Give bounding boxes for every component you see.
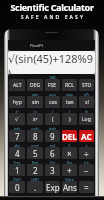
staticText: asin <box>26 92 44 97</box>
staticText: Exp <box>46 182 60 193</box>
staticText: abs <box>8 143 26 148</box>
button[interactable]: sin <box>27 96 43 108</box>
button[interactable]: Log <box>79 113 94 125</box>
button[interactable]: DEG <box>27 79 43 91</box>
staticText: Ans <box>63 182 77 193</box>
staticText: cosh <box>26 126 44 131</box>
staticText: Int <box>78 160 95 165</box>
button[interactable]: 2 <box>27 164 43 176</box>
staticText: STO <box>82 82 92 89</box>
button[interactable]: 7 <box>9 130 25 142</box>
button[interactable]: 9 <box>45 130 60 142</box>
staticText: E <box>61 143 78 148</box>
button[interactable]: ) <box>62 113 77 125</box>
button[interactable]: 3 <box>45 164 60 176</box>
staticText: x! <box>85 99 89 106</box>
staticText: cos <box>49 99 57 106</box>
staticText: mod <box>26 143 44 148</box>
staticText: − <box>84 165 89 176</box>
staticText: CNST <box>8 177 26 182</box>
staticText: xʸ <box>33 116 38 123</box>
button[interactable]: 4 <box>9 147 25 159</box>
button[interactable]: cos <box>45 96 60 108</box>
button[interactable]: Exp <box>45 181 60 193</box>
staticText: 0 <box>15 182 20 193</box>
staticText: Ndeg <box>61 177 78 182</box>
staticText: nPr <box>78 92 95 97</box>
staticText: √(sin(45)+128%9) <box>8 51 95 74</box>
staticText: DEL <box>62 131 77 142</box>
button[interactable]: hyp <box>9 96 25 108</box>
staticText: S A F E A N D E A S Y <box>0 14 104 21</box>
staticText: √y <box>26 109 44 114</box>
button[interactable]: × <box>62 147 77 159</box>
button[interactable]: + <box>62 164 77 176</box>
staticText: 1 <box>15 165 20 176</box>
button[interactable]: . <box>27 181 43 193</box>
staticText: [ <box>44 109 61 114</box>
staticText: Log <box>82 116 91 123</box>
staticText: ALT <box>13 82 22 89</box>
staticText: ) <box>69 116 71 123</box>
staticText: 4 <box>15 148 20 159</box>
staticText: ÷ <box>84 148 89 159</box>
button[interactable]: 8 <box>27 130 43 142</box>
button[interactable]: 1 <box>9 164 25 176</box>
staticText: Frac <box>8 160 26 165</box>
staticText: ( <box>52 116 54 123</box>
button[interactable]: − <box>79 164 94 176</box>
staticText: hyp <box>13 99 22 106</box>
staticText: FSE <box>48 82 57 89</box>
staticText: ] <box>61 109 78 114</box>
staticText: FloatPt <box>30 43 44 48</box>
staticText: x² <box>8 109 26 114</box>
staticText: ln <box>78 109 95 114</box>
staticText: . <box>34 182 37 193</box>
staticText: Pol <box>44 160 61 165</box>
button[interactable]: = <box>79 181 94 193</box>
staticText: 3 <box>50 165 55 176</box>
staticText: DEG <box>30 82 41 89</box>
staticText: 2 <box>33 165 38 176</box>
button[interactable]: x! <box>79 96 94 108</box>
staticText: 5 <box>33 148 38 159</box>
staticText: = <box>84 182 89 193</box>
staticText: acos <box>44 92 61 97</box>
staticText: tanh <box>44 126 61 131</box>
staticText: 7 <box>15 131 20 142</box>
button[interactable]: DEL <box>62 130 77 142</box>
staticText: Rnd <box>26 160 44 165</box>
staticText: tan <box>66 99 74 106</box>
staticText: ± <box>78 143 95 148</box>
button[interactable]: Ans <box>62 181 77 193</box>
staticText: 8 <box>33 131 38 142</box>
staticText: √ <box>15 116 19 122</box>
staticText: RCL <box>65 82 74 89</box>
staticText: gcd <box>44 143 61 148</box>
staticText: Scientific Calculator <box>0 1 104 13</box>
button[interactable]: FSE <box>45 79 60 91</box>
staticText: + <box>67 165 72 176</box>
staticText: sinh <box>8 126 26 131</box>
staticText: AC <box>81 131 92 142</box>
button[interactable]: tan <box>62 96 77 108</box>
button[interactable]: ÷ <box>79 147 94 159</box>
staticText: 6 <box>50 148 55 159</box>
button[interactable]: AC <box>79 130 94 142</box>
staticText: atan <box>61 92 78 97</box>
button[interactable]: 5 <box>27 147 43 159</box>
staticText: UNIT <box>26 177 44 182</box>
button[interactable]: 0 <box>9 181 25 193</box>
button[interactable]: ( <box>45 113 60 125</box>
button[interactable]: √ <box>9 113 25 125</box>
button[interactable]: 6 <box>45 147 60 159</box>
staticText: Rec <box>61 160 78 165</box>
button[interactable]: RCL <box>62 79 77 91</box>
button[interactable]: xʸ <box>27 113 43 125</box>
staticText: 9 <box>50 131 55 142</box>
button[interactable]: ALT <box>9 79 25 91</box>
staticText: TAB <box>44 75 61 80</box>
button[interactable]: STO <box>79 79 94 91</box>
staticText: × <box>67 148 72 159</box>
staticText: sin <box>32 99 39 106</box>
